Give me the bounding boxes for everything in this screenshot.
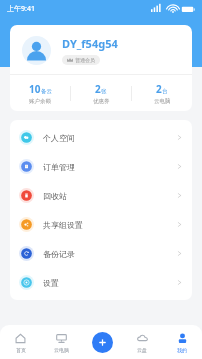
button[interactable]: 个人空间: [10, 123, 192, 152]
staticText: 个人空间: [43, 133, 75, 143]
button[interactable]: 云盘: [122, 325, 162, 359]
staticText: 云电脑: [154, 98, 171, 105]
button[interactable]: 备份记录: [10, 239, 192, 268]
staticText: 云电脑: [54, 347, 69, 353]
button[interactable]: 我的: [162, 325, 202, 359]
staticText: 2: [156, 82, 162, 96]
button[interactable]: DY_f54g54: [10, 25, 192, 74]
staticText: 备云: [41, 88, 52, 95]
staticText: 上午9:41: [7, 4, 35, 14]
staticText: 普通会员: [75, 57, 95, 63]
button[interactable]: 10: [10, 75, 70, 111]
staticText: 回收站: [43, 191, 67, 201]
staticText: 设置: [43, 278, 59, 288]
staticText: 云盘: [137, 347, 147, 353]
button[interactable]: 共享组设置: [10, 210, 192, 239]
button[interactable]: 设置: [10, 268, 192, 297]
staticText: 账户余额: [29, 98, 51, 105]
staticText: 我的: [177, 347, 187, 353]
staticText: 2: [95, 82, 101, 96]
button[interactable]: 首页: [0, 325, 41, 359]
staticText: 首页: [16, 347, 26, 353]
button[interactable]: 2: [132, 75, 192, 111]
button[interactable]: 云电脑: [41, 325, 82, 359]
staticText: 备份记录: [43, 249, 75, 259]
staticText: DY_f54g54: [62, 36, 118, 51]
button[interactable]: 新建: [92, 332, 113, 353]
staticText: 优惠券: [93, 98, 110, 105]
staticText: 10: [29, 82, 41, 96]
button[interactable]: 2: [71, 75, 131, 111]
staticText: 订单管理: [43, 162, 75, 172]
staticText: 共享组设置: [43, 220, 83, 230]
button[interactable]: 订单管理: [10, 152, 192, 181]
staticText: 台: [162, 88, 168, 95]
button[interactable]: 回收站: [10, 181, 192, 210]
staticText: 张: [101, 88, 107, 95]
